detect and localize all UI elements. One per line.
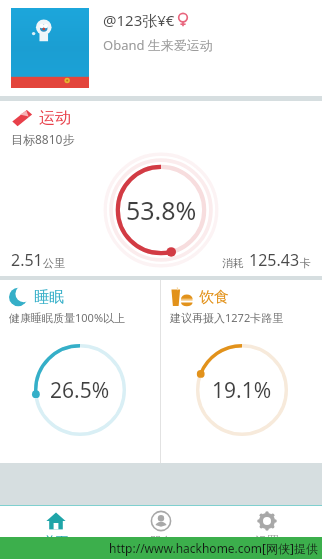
staticText: 消耗 xyxy=(222,256,244,270)
staticText: 睡眠 xyxy=(34,288,64,307)
staticText: 目标8810步 xyxy=(11,131,75,147)
staticText: 建议再摄入1272卡路里 xyxy=(170,310,284,325)
staticText: 2.51 xyxy=(11,249,43,271)
staticText: @123张¥€ xyxy=(103,10,175,30)
staticText: 饮食 xyxy=(199,288,229,307)
staticText: 朋友 xyxy=(149,533,173,548)
staticText: 53.8% xyxy=(126,193,197,227)
button[interactable]: 饮食 xyxy=(161,280,322,463)
other: Friends xyxy=(151,511,171,531)
staticText: 卡 xyxy=(300,256,311,270)
staticText: 125.43 xyxy=(249,249,300,271)
staticText: 26.5% xyxy=(50,376,110,405)
staticText: 19.1% xyxy=(212,376,272,405)
button[interactable]: Settings xyxy=(217,507,317,552)
staticText: 健康睡眠质量100%以上 xyxy=(9,310,126,325)
button[interactable]: Friends xyxy=(111,507,211,552)
other: Female xyxy=(177,13,189,27)
staticText: 设置 xyxy=(255,533,279,548)
other: Home xyxy=(46,511,66,531)
button[interactable]: 运动 xyxy=(0,101,322,276)
staticText: Oband 生来爱运动 xyxy=(103,36,213,54)
button[interactable]: Home xyxy=(6,507,106,552)
button[interactable]: 睡眠 xyxy=(0,280,160,463)
staticText: http://www.hackhome.com[网侠]提供 xyxy=(109,540,318,556)
other: Settings xyxy=(257,511,277,531)
staticText: 公里 xyxy=(43,256,65,270)
button[interactable]: @123张¥€ xyxy=(0,0,322,96)
staticText: 运动 xyxy=(39,108,71,128)
staticText: 首页 xyxy=(44,533,68,548)
